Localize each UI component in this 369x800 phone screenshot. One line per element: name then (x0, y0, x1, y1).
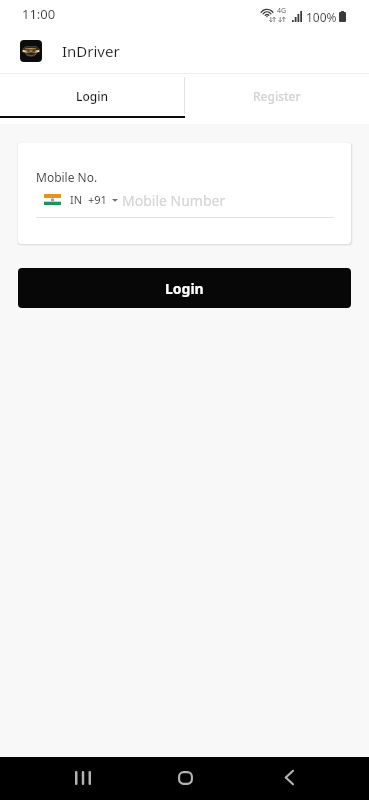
button[interactable]: Register (184, 74, 369, 118)
staticText: 4G (277, 6, 287, 16)
button[interactable]: Back (266, 756, 311, 799)
staticText: Login (165, 279, 204, 298)
button[interactable]: Recent apps (60, 756, 105, 799)
staticText: +91 (88, 192, 107, 207)
staticText: IN (70, 192, 83, 207)
staticText: Register (253, 88, 301, 104)
button[interactable]: Login (18, 268, 351, 308)
button[interactable]: App logo (20, 40, 42, 62)
button[interactable]: Login (0, 74, 184, 118)
staticText: 100% (306, 9, 337, 25)
staticText: Login (76, 88, 108, 104)
staticText: Mobile Number (122, 191, 226, 207)
button[interactable]: Select country code (44, 192, 118, 207)
button[interactable]: Home (163, 756, 208, 799)
staticText: InDriver (62, 41, 120, 61)
staticText: Mobile No. (36, 169, 98, 185)
staticText: 11:00 (22, 5, 56, 23)
